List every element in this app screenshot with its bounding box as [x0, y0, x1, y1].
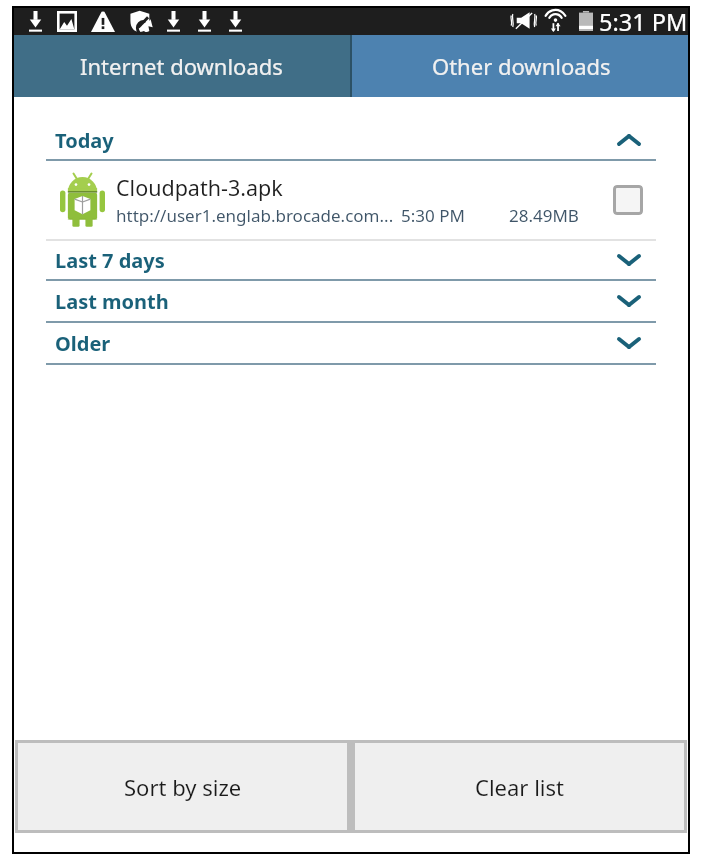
button[interactable]: Cloudpath-3.apk — [12, 161, 690, 241]
staticText: 28.49MB — [509, 204, 579, 227]
button[interactable]: Today — [12, 97, 690, 161]
staticText: 5:30 PM — [401, 204, 465, 227]
button[interactable]: Sort by size — [18, 743, 347, 830]
staticText: Sort by size — [124, 772, 242, 802]
staticText: Today — [55, 127, 114, 154]
staticText: 5:31 PM — [599, 6, 688, 35]
staticText: Other downloads — [432, 51, 611, 81]
staticText: Last 7 days — [55, 247, 165, 274]
staticText: Clear list — [475, 772, 564, 802]
button[interactable]: Internet downloads — [12, 35, 350, 97]
staticText: http://user1.englab.brocade.com... — [116, 204, 394, 227]
button[interactable]: Other downloads — [352, 35, 690, 97]
button[interactable]: Older — [12, 323, 690, 365]
button[interactable]: Clear list — [355, 743, 684, 830]
button[interactable]: Last month — [12, 281, 690, 323]
staticText: Cloudpath-3.apk — [116, 173, 283, 202]
button[interactable]: Last 7 days — [12, 241, 690, 281]
staticText: Last month — [55, 288, 169, 315]
staticText: Older — [55, 330, 111, 357]
staticText: Internet downloads — [80, 51, 283, 81]
button[interactable]: Select download — [613, 185, 643, 215]
